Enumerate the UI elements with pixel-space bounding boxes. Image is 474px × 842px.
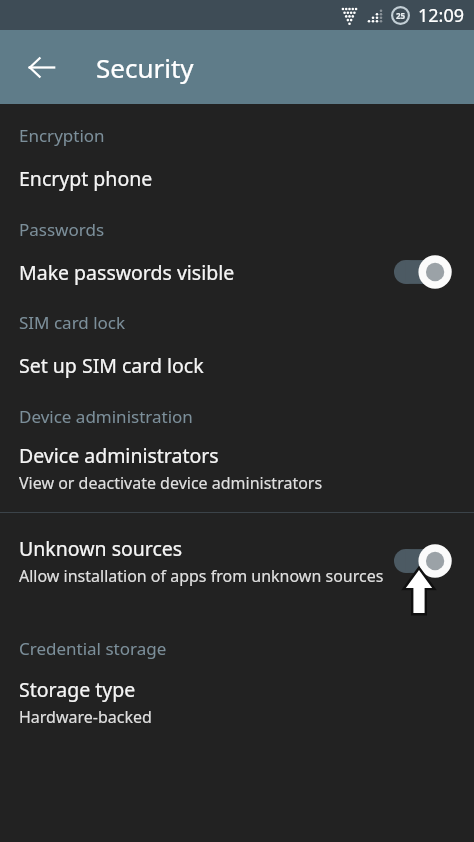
staticText: SIM card lock (19, 311, 126, 334)
staticText: Storage type (19, 676, 136, 703)
button[interactable]: Storage type (0, 676, 474, 728)
staticText: Credential storage (19, 637, 167, 660)
staticText: Encrypt phone (19, 165, 153, 192)
button[interactable]: Unknown sources switch, on (394, 544, 458, 578)
button[interactable]: Unknown sources (0, 513, 474, 593)
staticText: View or deactivate device administrators (19, 472, 323, 494)
staticText: Security (96, 50, 194, 85)
staticText: Device administrators (19, 442, 219, 469)
button[interactable]: Device administrators (0, 442, 474, 494)
staticText: Make passwords visible (19, 259, 235, 286)
staticText: Set up SIM card lock (19, 352, 204, 379)
staticText: Device administration (19, 405, 193, 428)
staticText: Allow installation of apps from unknown … (19, 565, 384, 587)
button[interactable]: Make passwords visible switch, on (394, 255, 458, 289)
staticText: Hardware-backed (19, 706, 152, 728)
staticText: 25 (396, 10, 406, 21)
button[interactable]: Encrypt phone (0, 165, 474, 192)
staticText: 12:09 (418, 3, 465, 28)
button[interactable]: Back (14, 40, 68, 94)
staticText: Passwords (19, 218, 105, 241)
button[interactable]: Set up SIM card lock (0, 352, 474, 379)
staticText: Unknown sources (19, 535, 183, 562)
staticText: Encryption (19, 124, 105, 147)
other: Highlight arrow pointing at Unknown sour… (405, 569, 433, 614)
button[interactable]: Make passwords visible (0, 255, 474, 289)
